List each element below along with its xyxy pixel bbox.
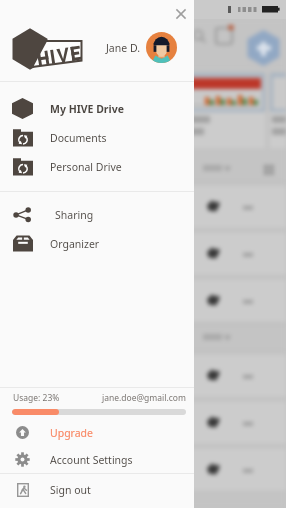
button[interactable]: Sharing	[0, 200, 194, 229]
button[interactable]: Close drawer	[172, 5, 190, 23]
button[interactable]: My HIVE Drive	[0, 94, 194, 123]
staticText: Personal Drive	[50, 160, 122, 174]
staticText: Sharing	[55, 208, 94, 222]
staticText: Usage: 23%	[13, 392, 60, 404]
staticText: My HIVE Drive	[50, 102, 124, 116]
button[interactable]: Organizer	[0, 229, 194, 258]
staticText: Organizer	[50, 237, 100, 251]
button[interactable]: Documents	[0, 123, 194, 152]
staticText: jane.doe@gmail.com	[102, 392, 186, 404]
button[interactable]: Upgrade	[0, 419, 194, 446]
staticText: Sign out	[50, 483, 91, 497]
button[interactable]: Personal Drive	[0, 152, 194, 181]
staticText: Documents	[50, 131, 107, 145]
staticText: Account Settings	[50, 453, 133, 467]
button[interactable]: Account Settings	[0, 446, 194, 473]
button[interactable]: Sign out	[0, 474, 194, 505]
staticText: Jane D.	[106, 41, 140, 55]
staticText: Upgrade	[50, 426, 93, 440]
